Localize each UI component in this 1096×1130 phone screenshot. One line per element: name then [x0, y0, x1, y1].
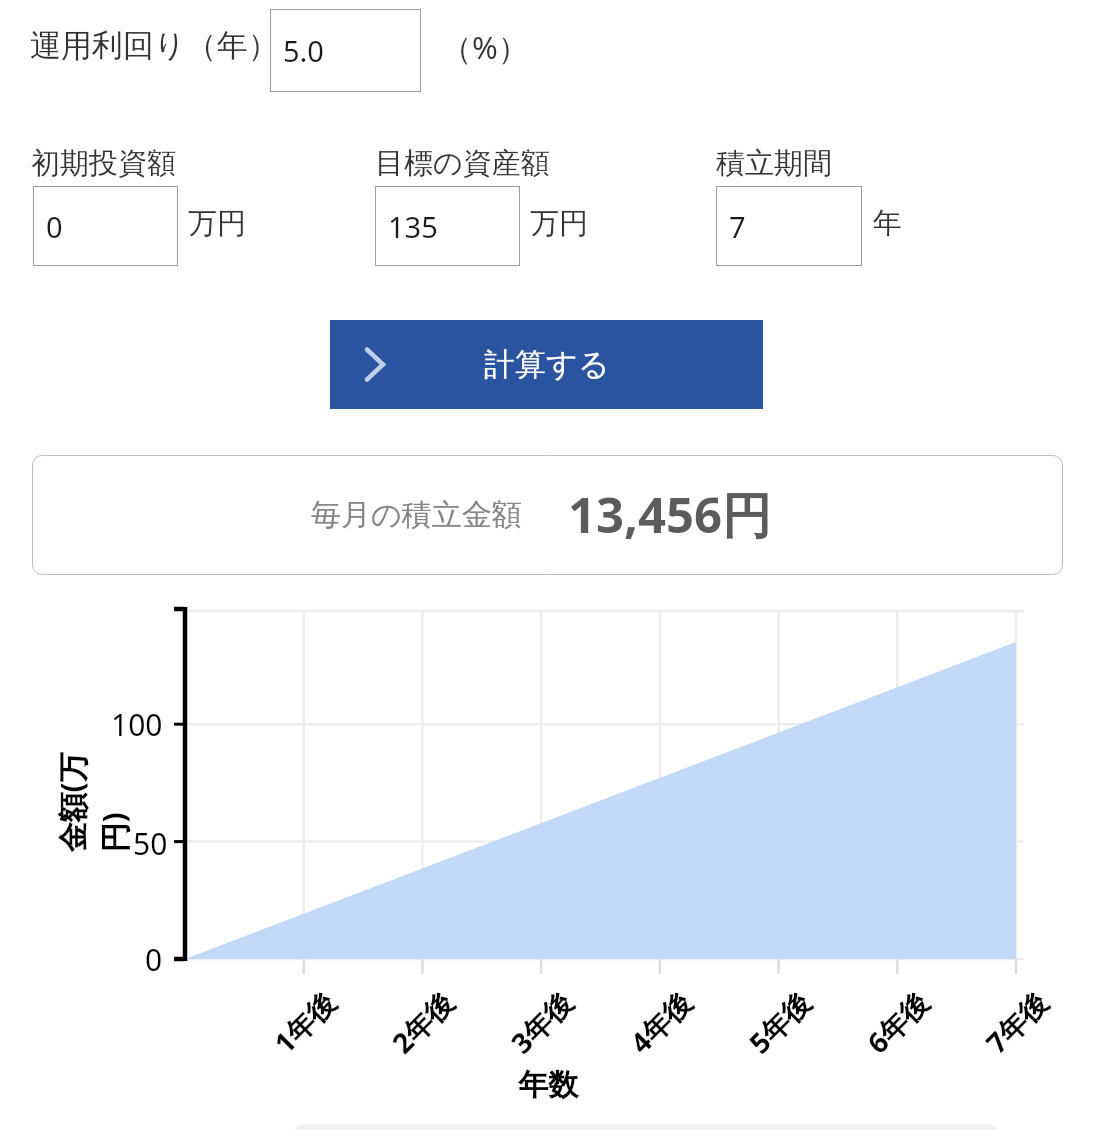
staticText: 金額(万円): [50, 748, 133, 852]
staticText: 0: [46, 207, 63, 246]
staticText: 135: [388, 207, 438, 246]
button[interactable]: 運用利回り: [270, 9, 421, 92]
staticText: 13,456円: [568, 481, 772, 548]
staticText: 万円: [188, 205, 246, 242]
staticText: 1年後: [265, 983, 344, 1061]
staticText: 50: [133, 823, 168, 864]
button[interactable]: [32, 455, 1063, 575]
staticText: 3年後: [502, 983, 581, 1061]
staticText: 7: [729, 207, 746, 246]
staticText: 100: [111, 704, 163, 745]
button[interactable]: 目標の資産額: [375, 186, 520, 266]
button[interactable]: 初期投資額: [33, 186, 178, 266]
staticText: （%）: [441, 26, 529, 68]
staticText: 0: [145, 939, 163, 980]
staticText: 6年後: [858, 983, 937, 1061]
staticText: 2年後: [383, 983, 462, 1061]
staticText: 年数: [518, 1066, 578, 1104]
staticText: 5年後: [740, 983, 819, 1061]
staticText: 目標の資産額: [375, 145, 550, 182]
staticText: 5.0: [283, 31, 324, 70]
button[interactable]: 積立期間: [716, 186, 862, 266]
staticText: 積立期間: [716, 145, 832, 182]
staticText: 運用利回り（年）: [30, 26, 279, 65]
button[interactable]: 計算する: [330, 320, 763, 409]
staticText: 初期投資額: [31, 145, 176, 182]
staticText: 計算する: [484, 345, 610, 384]
staticText: 4年後: [621, 983, 700, 1061]
staticText: 毎月の積立金額: [311, 496, 522, 534]
staticText: 年: [873, 205, 902, 242]
staticText: 7年後: [977, 983, 1056, 1061]
staticText: 万円: [530, 205, 588, 242]
